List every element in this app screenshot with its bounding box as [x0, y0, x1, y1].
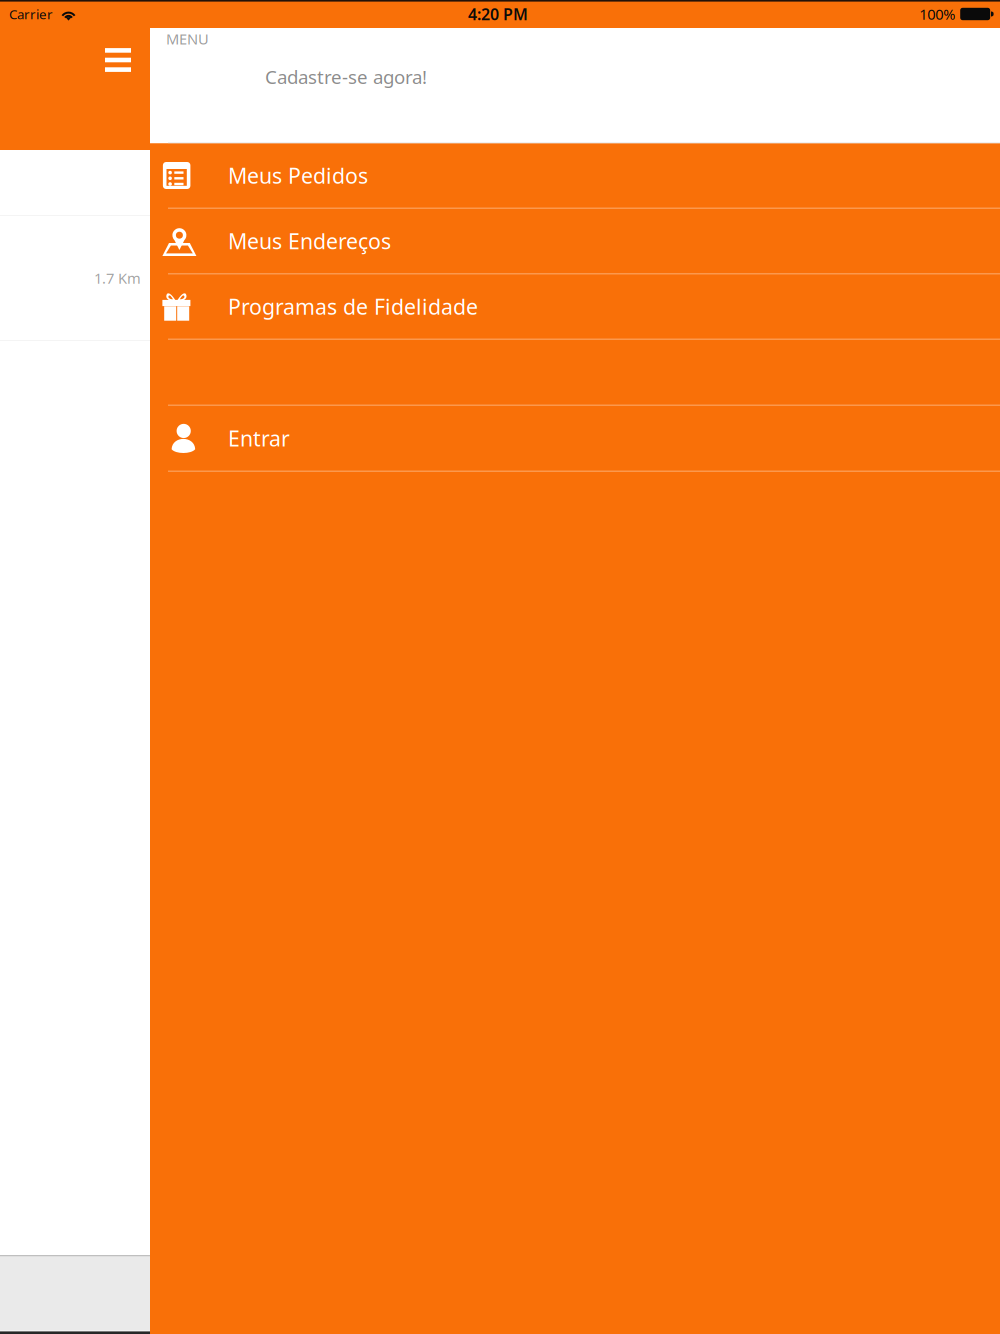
staticText: Meus Endereços [228, 227, 391, 255]
button[interactable]: Menu [93, 38, 143, 82]
button[interactable]: Cadastre-se agora! [243, 56, 449, 97]
staticText: Meus Pedidos [228, 161, 368, 190]
staticText: 4:20 PM [468, 3, 528, 25]
staticText: Carrier [9, 5, 53, 23]
button[interactable]: 1.7 Km [0, 216, 1000, 340]
button[interactable]: Meus Pedidos [150, 143, 1000, 209]
button[interactable]: Programas de Fidelidade [150, 274, 1000, 340]
staticText: Programas de Fidelidade [228, 292, 478, 321]
button[interactable]: Meus Endereços [150, 209, 1000, 274]
button[interactable]: Entrar [150, 406, 1000, 472]
staticText: 100% [919, 4, 955, 24]
staticText: Cadastre-se agora! [265, 64, 427, 89]
staticText: Entrar [228, 424, 290, 452]
staticText: 1.7 Km [94, 268, 141, 288]
staticText: MENU [166, 29, 209, 48]
